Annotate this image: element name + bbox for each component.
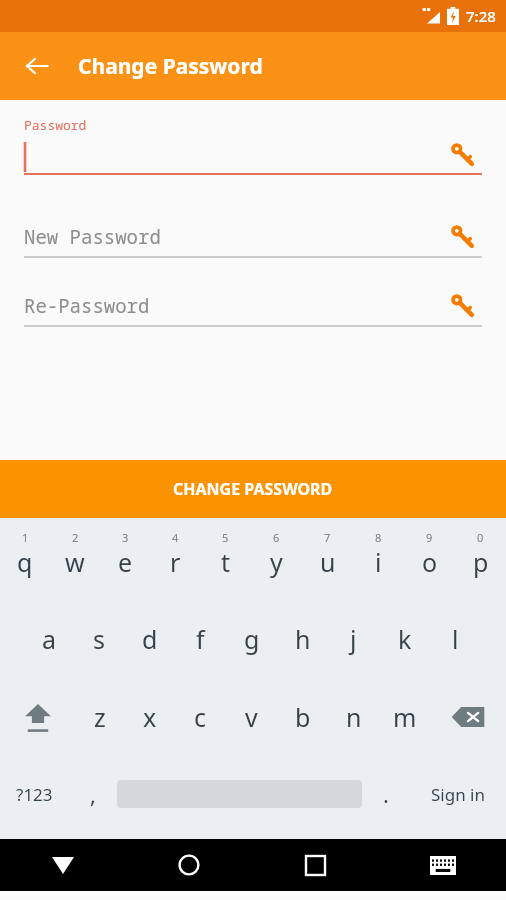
staticText: c [194,700,207,734]
button[interactable]: 8 [353,522,404,600]
staticText: r [170,545,181,579]
button[interactable]: Backspace [430,678,506,756]
button[interactable]: Re-Password [0,281,506,349]
button[interactable]: 4 [150,522,200,600]
button[interactable]: 3 [100,522,150,600]
staticText: Re-Password [24,293,150,319]
button[interactable]: 6 [251,522,302,600]
button[interactable]: 1 [0,522,50,600]
button[interactable]: CHANGE PASSWORD [0,460,506,518]
button[interactable]: Shift [0,678,75,756]
staticText: z [94,700,106,734]
button[interactable]: 9 [404,522,455,600]
button[interactable]: m [379,678,430,756]
button[interactable]: Switch keyboard [379,839,506,891]
button[interactable]: d [124,600,175,678]
staticText: 5 [222,530,229,545]
staticText: x [143,700,157,734]
button[interactable]: Space [117,756,362,832]
button[interactable]: b [277,678,328,756]
staticText: t [221,545,231,579]
staticText: 1 [22,530,29,545]
button[interactable]: Home [126,839,252,891]
button[interactable]: Show password [444,218,480,254]
button[interactable]: x [125,678,175,756]
button[interactable]: j [328,600,379,678]
staticText: d [142,622,158,656]
staticText: o [422,545,438,579]
staticText: m [393,700,417,734]
staticText: 0 [477,530,484,545]
staticText: q [17,545,33,579]
staticText: Password [24,116,87,134]
staticText: CHANGE PASSWORD [173,478,333,500]
staticText: , [90,779,96,809]
staticText: h [295,622,311,656]
button[interactable]: l [430,600,481,678]
staticText: e [118,545,133,579]
staticText: g [244,622,260,656]
button[interactable]: z [75,678,125,756]
staticText: k [398,622,412,656]
staticText: y [270,545,283,579]
staticText: 7:28 [466,6,496,26]
staticText: b [295,700,311,734]
button[interactable]: New Password [0,212,506,280]
staticText: w [65,545,85,579]
button[interactable]: Password [0,100,506,200]
button[interactable]: Recents [252,839,379,891]
staticText: Sign in [431,783,485,806]
staticText: j [350,622,357,656]
button[interactable]: Show password [444,287,480,323]
staticText: i [375,545,382,579]
button[interactable]: s [74,600,124,678]
staticText: l [452,622,459,656]
staticText: n [346,700,362,734]
staticText: Change Password [78,52,263,81]
staticText: 6 [273,530,280,545]
staticText: 8 [375,530,382,545]
staticText: 2 [72,530,79,545]
button[interactable]: n [328,678,379,756]
button[interactable]: h [277,600,328,678]
staticText: 7 [324,530,331,545]
staticText: f [196,622,205,656]
staticText: ?123 [16,783,53,806]
button[interactable]: ?123 [0,756,69,832]
staticText: 4 [172,530,179,545]
button[interactable]: Show password [444,136,480,172]
staticText: New Password [24,224,161,250]
staticText: s [93,622,105,656]
button[interactable]: 0 [455,522,506,600]
staticText: p [473,545,489,579]
staticText: u [320,545,336,579]
button[interactable]: 7 [302,522,353,600]
button[interactable]: , [69,756,117,832]
button[interactable]: f [175,600,226,678]
button[interactable]: g [226,600,277,678]
staticText: v [245,700,258,734]
button[interactable]: 5 [200,522,251,600]
button[interactable]: Back [0,839,126,891]
button[interactable]: k [379,600,430,678]
button[interactable]: Back [14,43,60,89]
staticText: a [42,622,57,656]
button[interactable]: v [226,678,277,756]
button[interactable]: . [362,756,410,832]
staticText: 9 [426,530,433,545]
staticText: 3 [122,530,129,545]
button[interactable]: a [24,600,74,678]
button[interactable]: 2 [50,522,100,600]
button[interactable]: Sign in [410,756,506,832]
staticText: . [383,779,389,809]
button[interactable]: c [175,678,226,756]
